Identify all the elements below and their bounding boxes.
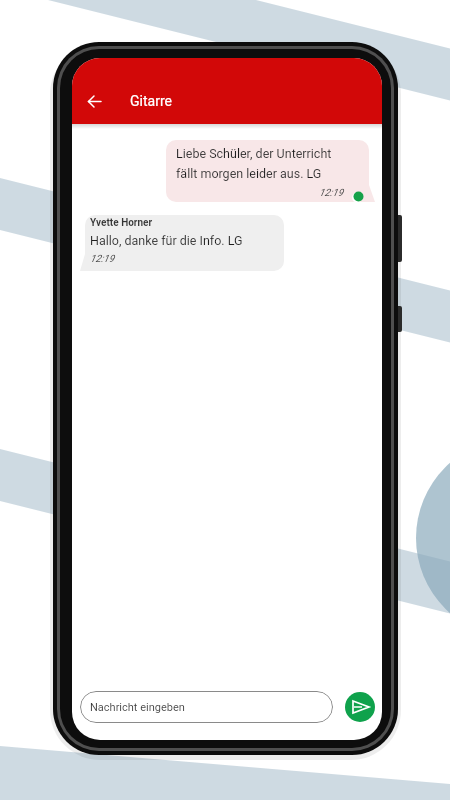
staticText: fällt morgen leider aus. LG [176, 166, 322, 181]
staticText: Liebe Schüler, der Unterricht [176, 146, 332, 161]
staticText: Hallo, danke für die Info. LG [90, 233, 243, 248]
staticText: Gitarre [130, 93, 172, 109]
staticText: 12:19 [90, 253, 115, 265]
staticText: 12:19 [319, 187, 344, 199]
staticText: Yvette Horner [90, 217, 153, 229]
button[interactable]: Yvette Horner [85, 215, 284, 271]
button[interactable]: Nachricht eingeben [80, 691, 333, 723]
button[interactable] [80, 87, 109, 116]
button[interactable]: Liebe Schüler, der Unterricht [166, 140, 369, 202]
staticText: Nachricht eingeben [90, 701, 185, 714]
button[interactable] [345, 692, 375, 722]
